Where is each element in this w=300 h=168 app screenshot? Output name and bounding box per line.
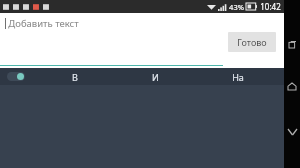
button[interactable]: Готово (228, 32, 276, 52)
button[interactable]: Back (284, 124, 300, 140)
staticText: Готово (237, 36, 267, 48)
button[interactable]: Toggle suggestions (7, 72, 25, 81)
button[interactable]: На (216, 68, 260, 85)
button[interactable]: Home (284, 78, 300, 94)
staticText: На (232, 71, 244, 83)
staticText: И (152, 71, 159, 83)
staticText: В (72, 71, 78, 83)
button[interactable]: И (133, 68, 177, 85)
staticText: 10:42 (260, 1, 281, 12)
button[interactable]: Добавить текст (5, 17, 79, 30)
button[interactable]: В (53, 68, 97, 85)
button[interactable]: Recents (284, 36, 300, 52)
staticText: 43% (229, 2, 244, 12)
staticText: Добавить текст (8, 17, 79, 30)
